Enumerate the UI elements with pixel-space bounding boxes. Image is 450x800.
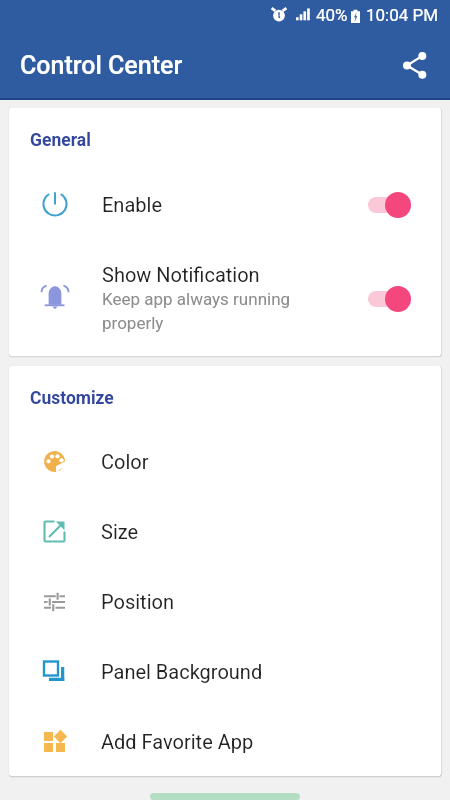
button[interactable]: Show Notification bbox=[9, 240, 441, 356]
button[interactable]: Size bbox=[9, 496, 441, 566]
staticText: Position bbox=[101, 590, 174, 613]
button[interactable]: Toggle bbox=[362, 188, 416, 220]
staticText: Customize bbox=[30, 388, 114, 409]
staticText: General bbox=[30, 130, 91, 151]
staticText: Size bbox=[101, 520, 139, 543]
button[interactable]: Enable bbox=[9, 168, 441, 240]
staticText: Keep app always running properly bbox=[102, 289, 298, 333]
staticText: 10:04 PM bbox=[366, 5, 439, 25]
staticText: Color bbox=[101, 450, 149, 473]
staticText: Add Favorite App bbox=[101, 730, 254, 753]
staticText: 40% bbox=[316, 5, 348, 25]
staticText: Control Center bbox=[20, 51, 183, 80]
staticText: Enable bbox=[102, 193, 162, 216]
button[interactable]: Color bbox=[9, 426, 441, 496]
staticText: Panel Background bbox=[101, 660, 263, 683]
button[interactable] bbox=[150, 793, 300, 800]
button[interactable]: Panel Background bbox=[9, 636, 441, 706]
button[interactable]: Position bbox=[9, 566, 441, 636]
staticText: Show Notification bbox=[102, 263, 260, 286]
button[interactable]: Add Favorite App bbox=[9, 706, 441, 776]
button[interactable]: Share bbox=[395, 44, 437, 86]
button[interactable]: Toggle bbox=[362, 282, 416, 314]
